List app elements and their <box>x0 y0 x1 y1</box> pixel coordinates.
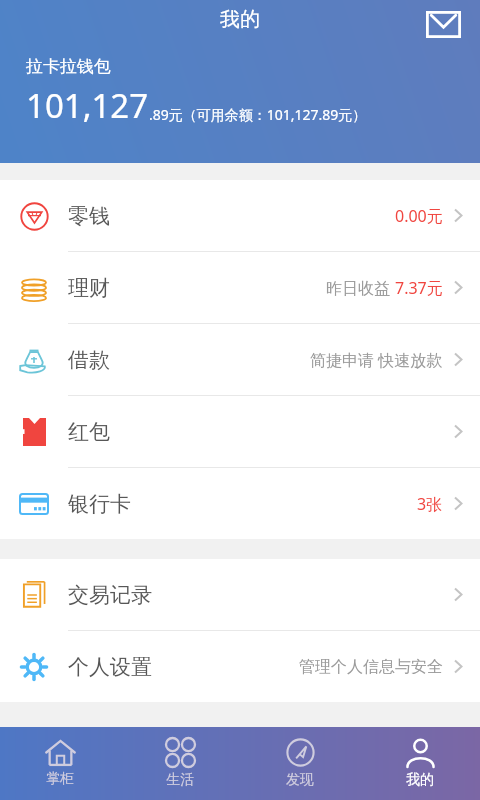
staticText: 交易记录 <box>68 582 152 608</box>
staticText: .89元（可用余额：101,127.89元） <box>149 105 367 124</box>
button[interactable]: 交易记录 <box>0 559 480 631</box>
button[interactable]: 我的 <box>360 727 480 800</box>
staticText: 0.00元 <box>395 205 443 227</box>
button[interactable]: 红包 <box>0 396 480 468</box>
staticText: 拉卡拉钱包 <box>26 56 111 77</box>
button[interactable]: 掌柜 <box>0 727 120 800</box>
staticText: 红包 <box>68 419 110 445</box>
staticText: 零钱 <box>68 203 110 229</box>
button[interactable]: 零钱 <box>0 180 480 252</box>
staticText: 理财 <box>68 275 110 301</box>
staticText: 我的 <box>406 771 434 789</box>
button[interactable]: 理财 <box>0 252 480 324</box>
staticText: 发现 <box>286 771 314 789</box>
staticText: 掌柜 <box>46 770 74 788</box>
staticText: 101,127 <box>26 83 149 128</box>
staticText: 个人设置 <box>68 654 152 680</box>
staticText: 借款 <box>68 347 110 373</box>
staticText: 银行卡 <box>68 491 131 517</box>
staticText: 昨日收益 <box>326 277 395 299</box>
staticText: 管理个人信息与安全 <box>299 657 443 677</box>
staticText: 生活 <box>166 771 194 789</box>
staticText: 7.37元 <box>395 277 443 299</box>
button[interactable]: 个人设置 <box>0 631 480 702</box>
button[interactable]: Messages <box>420 1 466 47</box>
button[interactable]: 借款 <box>0 324 480 396</box>
staticText: 简捷申请 快速放款 <box>310 349 443 371</box>
button[interactable]: 发现 <box>240 727 360 800</box>
button[interactable]: 生活 <box>120 727 240 800</box>
staticText: 我的 <box>0 7 480 32</box>
button[interactable]: 银行卡 <box>0 468 480 539</box>
staticText: 3张 <box>417 493 443 515</box>
